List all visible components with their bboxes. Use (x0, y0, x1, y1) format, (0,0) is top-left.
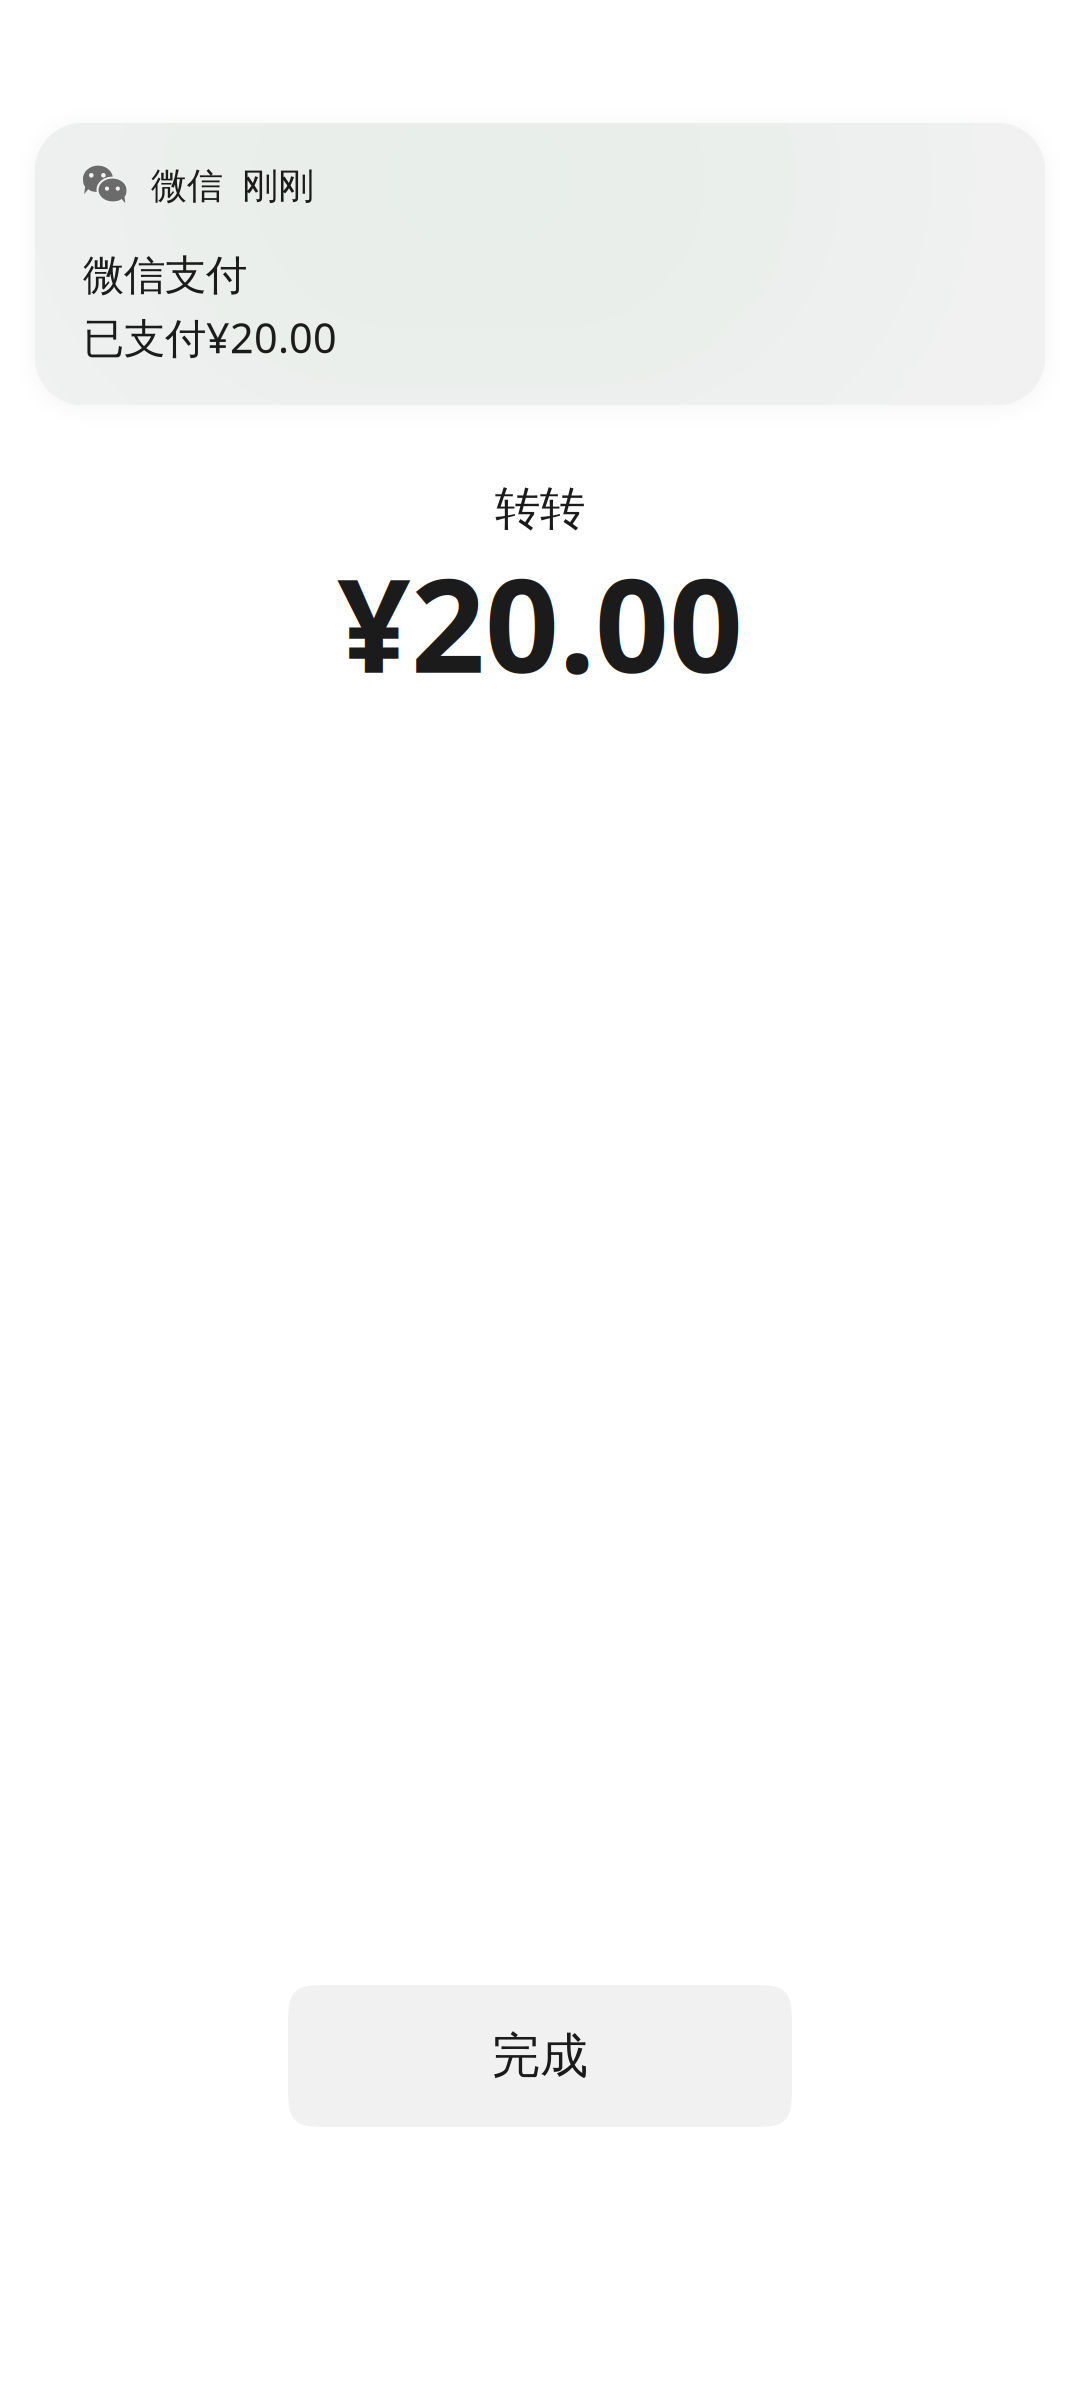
staticText: 微信支付 (83, 250, 247, 301)
staticText: 完成 (492, 2026, 588, 2085)
button[interactable]: 完成 (288, 1985, 792, 2127)
button[interactable]: 微信 (35, 123, 1045, 405)
staticText: 转转 (495, 481, 585, 537)
staticText: ¥20.00 (337, 537, 743, 708)
staticText: 刚刚 (242, 164, 314, 208)
staticText: 微信 (151, 164, 223, 208)
staticText: 已支付¥20.00 (83, 310, 337, 365)
